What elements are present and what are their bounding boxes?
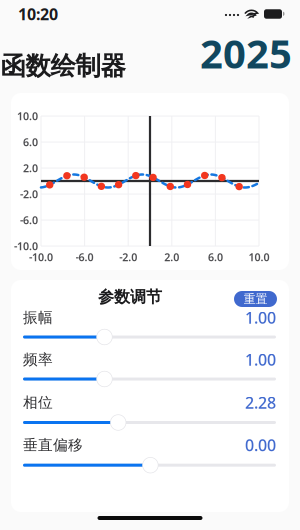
staticText: 1.00	[245, 307, 276, 328]
staticText: 10:20	[18, 3, 58, 25]
staticText: -10.0	[14, 239, 38, 253]
staticText: -10.0	[29, 250, 53, 264]
button[interactable]: 重置	[234, 291, 277, 307]
button[interactable]	[23, 327, 276, 347]
staticText: -2.0	[20, 187, 38, 201]
staticText: 0.00	[245, 434, 276, 456]
staticText: -6.0	[20, 213, 38, 227]
staticText: 1.00	[245, 349, 276, 370]
button[interactable]	[23, 369, 276, 389]
staticText: 振幅	[23, 308, 53, 326]
staticText: 2.0	[164, 250, 179, 264]
staticText: 10.0	[17, 109, 38, 123]
staticText: 相位	[23, 393, 53, 411]
staticText: 2025	[200, 26, 292, 79]
staticText: 函数绘制器	[0, 50, 125, 81]
staticText: 10.0	[248, 250, 269, 264]
staticText: -2.0	[119, 250, 137, 264]
button[interactable]	[23, 455, 276, 475]
button[interactable]	[23, 412, 276, 432]
staticText: 6.0	[208, 250, 223, 264]
staticText: 参数调节	[98, 287, 162, 307]
staticText: 2.0	[23, 161, 38, 175]
staticText: 6.0	[23, 135, 38, 149]
staticText: -6.0	[76, 250, 94, 264]
staticText: 频率	[23, 350, 53, 368]
staticText: 2.28	[245, 392, 276, 413]
staticText: 垂直偏移	[23, 436, 83, 454]
staticText: 重置	[243, 292, 267, 306]
